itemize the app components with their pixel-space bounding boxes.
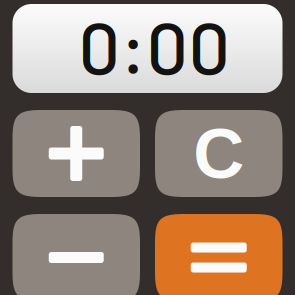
button[interactable]: Equals	[155, 214, 282, 295]
button[interactable]: Minus	[12, 214, 140, 295]
button[interactable]: Clear	[155, 110, 282, 197]
staticText: C	[193, 114, 244, 193]
button[interactable]: Plus	[12, 110, 140, 197]
staticText: 0:00	[78, 1, 230, 89]
